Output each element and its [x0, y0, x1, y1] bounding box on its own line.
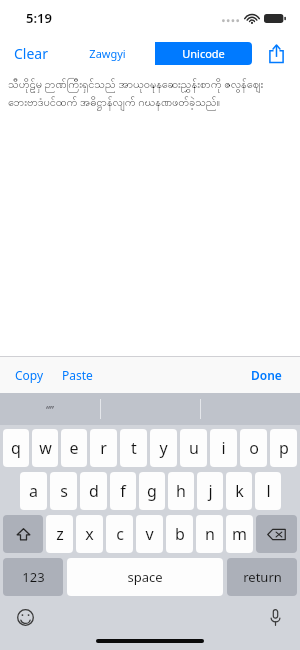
button[interactable]: d [80, 472, 107, 510]
staticText: b [175, 523, 185, 545]
button[interactable]: w [32, 429, 58, 467]
staticText: n [205, 523, 215, 545]
button[interactable]: Copy [10, 361, 49, 389]
button[interactable]: p [270, 429, 297, 467]
staticText: z [56, 523, 64, 545]
button[interactable]: Backspace [256, 515, 297, 553]
button[interactable]: y [150, 429, 177, 467]
button[interactable]: t [120, 429, 147, 467]
staticText: j [208, 480, 213, 502]
button[interactable]: s [50, 472, 77, 510]
staticText: g [147, 480, 157, 502]
staticText: “” [46, 402, 54, 417]
button[interactable]: i [210, 429, 237, 467]
staticText: v [145, 523, 154, 545]
staticText: t [131, 437, 137, 459]
staticText: သီဟိုဠ်မှ ဉာဏ်ကြီးရှင်သည် အာယုဝဍ္ဎနဆေးညွ… [8, 76, 264, 93]
staticText: Copy [15, 367, 44, 383]
staticText: ဘေးဗာဒံပင်ထက် အဓိဋ္ဌာန်လျက် ဂဃနဏဖတ်ခဲ့သည… [8, 94, 220, 111]
staticText: w [39, 437, 52, 459]
button[interactable]: c [106, 515, 133, 553]
button[interactable]: j [197, 472, 223, 510]
staticText: Done [251, 367, 282, 383]
staticText: q [11, 437, 21, 459]
staticText: Unicode [182, 46, 225, 61]
button[interactable]: Clear [10, 40, 52, 67]
button[interactable]: Share [262, 39, 290, 67]
button[interactable]: v [136, 515, 163, 553]
button[interactable]: g [139, 472, 165, 510]
button[interactable]: Unicode [155, 42, 252, 65]
staticText: r [100, 437, 107, 459]
staticText: k [235, 480, 244, 502]
button[interactable]: r [90, 429, 117, 467]
staticText: Clear [14, 44, 48, 63]
staticText: h [176, 480, 186, 502]
button[interactable]: space [67, 558, 223, 596]
button[interactable]: a [20, 472, 47, 510]
button[interactable]: q [3, 429, 29, 467]
button[interactable]: m [226, 515, 253, 553]
staticText: m [232, 523, 247, 545]
staticText: u [189, 437, 199, 459]
button[interactable]: return [227, 558, 297, 596]
staticText: i [221, 437, 226, 459]
staticText: f [120, 480, 126, 502]
staticText: Paste [62, 367, 93, 383]
button[interactable]: x [76, 515, 103, 553]
staticText: c [116, 523, 124, 545]
button[interactable]: z [46, 515, 73, 553]
staticText: x [85, 523, 94, 545]
staticText: e [69, 437, 79, 459]
button[interactable]: Paste [57, 361, 98, 389]
button[interactable]: Done [247, 361, 286, 389]
button[interactable]: “” [0, 393, 100, 425]
staticText: 5:19 [26, 9, 52, 27]
staticText: y [159, 437, 168, 459]
staticText: d [89, 480, 99, 502]
button[interactable]: u [180, 429, 207, 467]
staticText: a [29, 480, 38, 502]
button[interactable]: h [168, 472, 194, 510]
staticText: o [249, 437, 259, 459]
button[interactable]: l [255, 472, 281, 510]
staticText: return [243, 568, 282, 586]
staticText: l [266, 480, 271, 502]
button[interactable]: o [240, 429, 267, 467]
button[interactable]: Dictation [262, 604, 288, 630]
button[interactable]: Zawgyi [59, 42, 155, 65]
staticText: s [60, 480, 68, 502]
button[interactable]: k [226, 472, 252, 510]
staticText: space [127, 568, 163, 586]
button[interactable]: Shift [3, 515, 43, 553]
staticText: p [279, 437, 289, 459]
staticText: 123 [22, 568, 45, 586]
button[interactable]: f [110, 472, 136, 510]
button[interactable]: e [61, 429, 87, 467]
button[interactable]: Emoji [12, 604, 38, 630]
button[interactable]: b [166, 515, 193, 553]
button[interactable]: 123 [3, 558, 63, 596]
staticText: Zawgyi [89, 46, 126, 61]
button[interactable]: n [196, 515, 223, 553]
